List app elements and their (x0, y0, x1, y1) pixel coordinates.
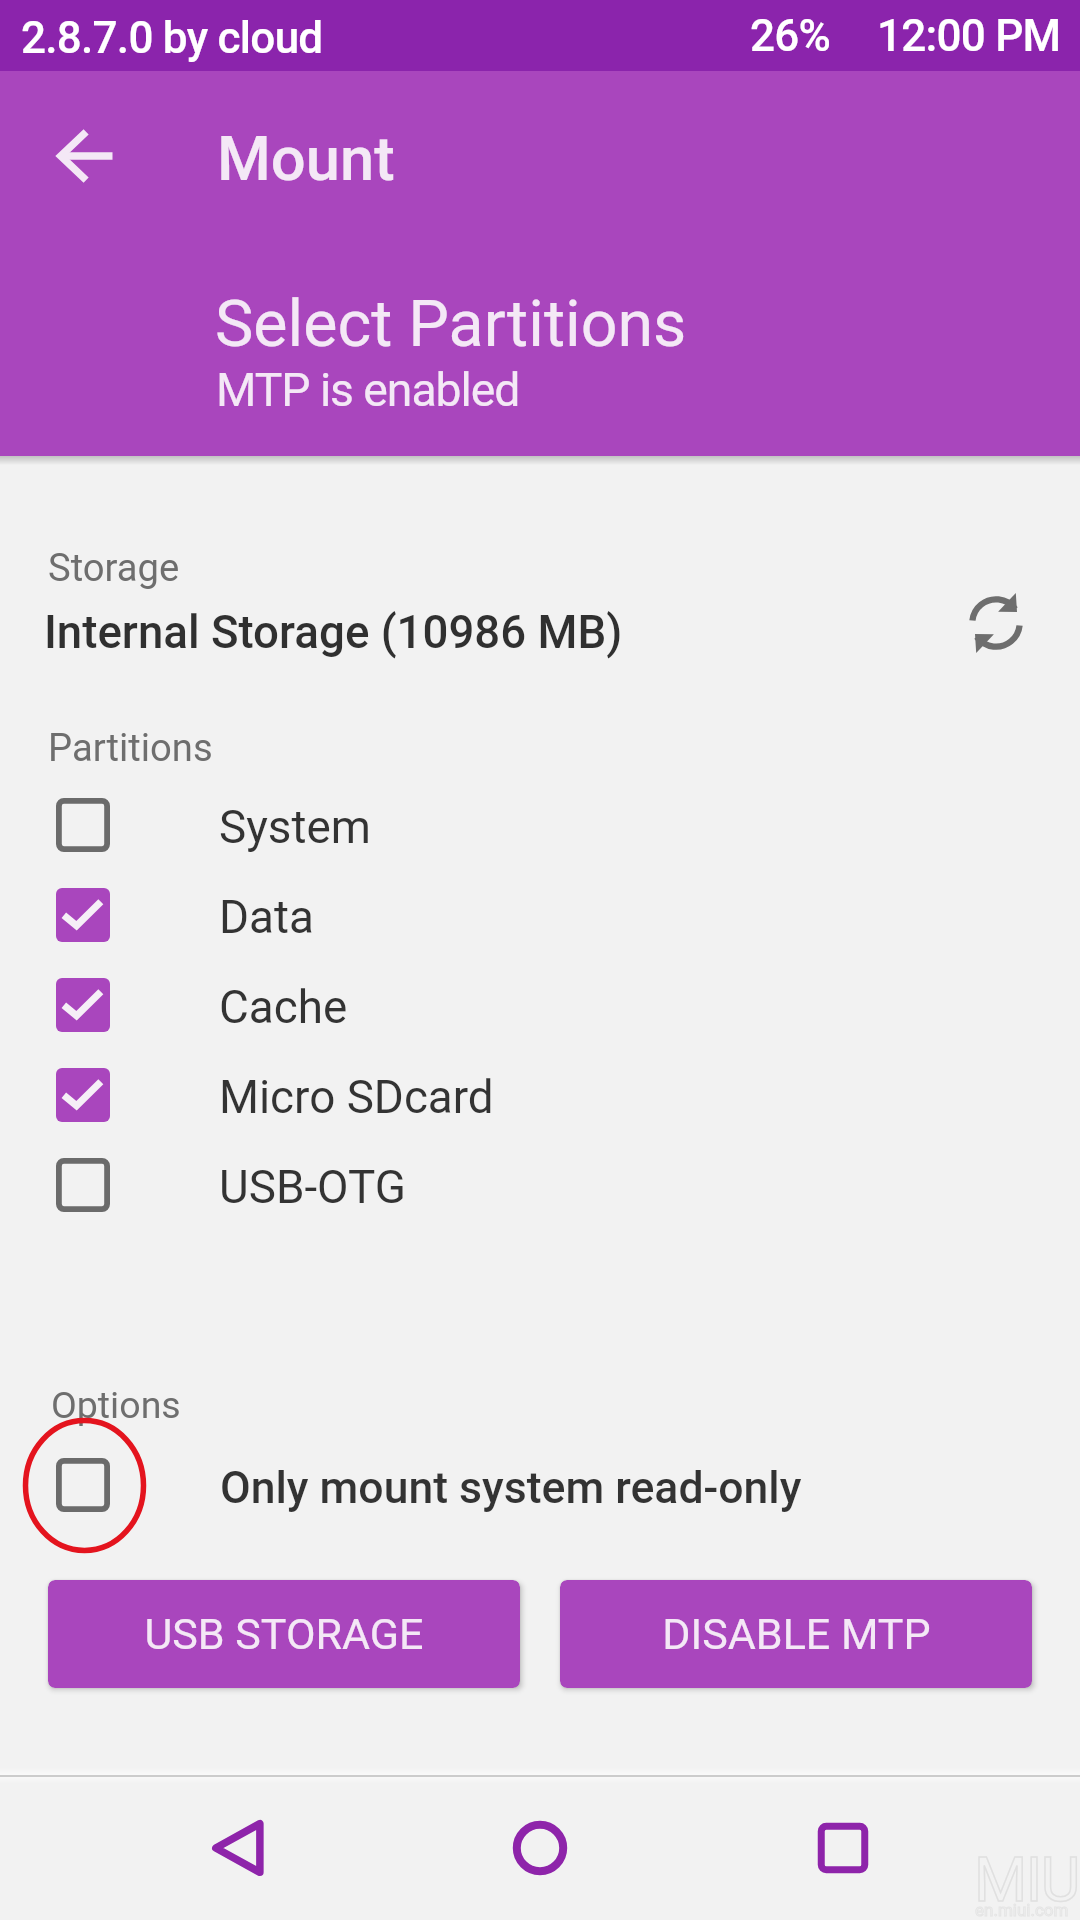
staticText: Select Partitions (215, 286, 687, 362)
button[interactable]: DISABLE MTP (560, 1580, 1032, 1688)
button[interactable]: Recents (793, 1798, 893, 1898)
button[interactable]: Back (189, 1798, 289, 1898)
staticText: Internal Storage (10986 MB) (44, 606, 623, 659)
staticText: MTP is enabled (216, 363, 520, 417)
staticText: Cache (219, 981, 348, 1035)
button[interactable]: Refresh (936, 563, 1056, 683)
button[interactable]: USB STORAGE (48, 1580, 520, 1688)
staticText: MIUI (974, 1844, 1080, 1915)
button[interactable]: Back (33, 104, 137, 208)
staticText: Mount (217, 123, 395, 195)
staticText: DISABLE MTP (662, 1609, 931, 1659)
staticText: Storage (48, 546, 180, 591)
staticText: Data (219, 891, 314, 945)
staticText: 26% (750, 10, 831, 62)
staticText: Partitions (48, 726, 213, 771)
staticText: en.miui.com (975, 1900, 1069, 1920)
staticText: USB-OTG (219, 1161, 406, 1215)
button[interactable]: Micro SDcard (0, 1050, 1080, 1140)
staticText: 2.8.7.0 by cloud (21, 12, 323, 64)
button[interactable]: USB-OTG (0, 1140, 1080, 1230)
staticText: Only mount system read-only (220, 1462, 802, 1514)
staticText: USB STORAGE (144, 1609, 424, 1659)
button[interactable]: Home (490, 1798, 590, 1898)
button[interactable]: Only mount system read-only (0, 1440, 1080, 1530)
staticText: Micro SDcard (219, 1071, 494, 1125)
button[interactable]: Data (0, 870, 1080, 960)
staticText: System (219, 801, 371, 855)
button[interactable]: Cache (0, 960, 1080, 1050)
staticText: Options (51, 1383, 181, 1427)
button[interactable]: System (0, 780, 1080, 870)
staticText: 12:00 PM (877, 10, 1061, 62)
